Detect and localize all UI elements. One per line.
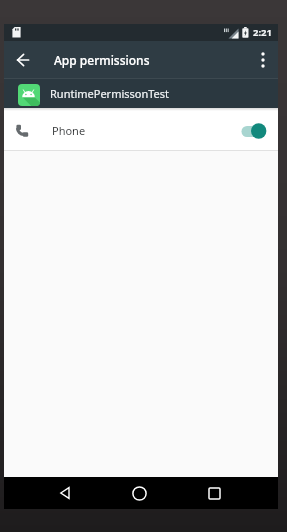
button[interactable]: Phone <box>4 108 278 150</box>
staticText: 2:21 <box>253 26 272 39</box>
button[interactable] <box>102 477 177 509</box>
staticText: Phone <box>52 123 86 138</box>
staticText: App permissions <box>54 52 150 68</box>
button[interactable] <box>177 477 252 509</box>
staticText: RuntimePermissonTest <box>50 86 170 101</box>
button[interactable] <box>240 108 267 150</box>
button[interactable] <box>4 41 42 78</box>
button[interactable] <box>27 477 102 509</box>
button[interactable] <box>248 41 278 78</box>
button[interactable]: RuntimePermissonTest <box>4 79 278 108</box>
